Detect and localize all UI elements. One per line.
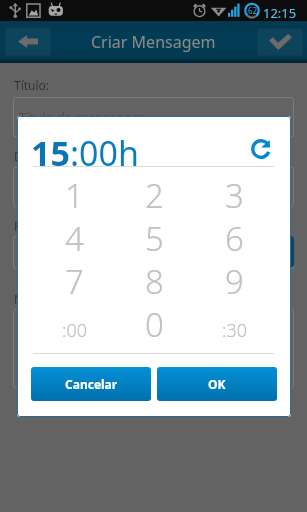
button[interactable]: 5 <box>114 216 194 259</box>
staticText: 15 <box>31 130 70 176</box>
staticText: 12:15 <box>263 4 297 22</box>
staticText: Cancelar <box>65 376 118 392</box>
button[interactable]: 8 <box>114 259 194 302</box>
button[interactable]: OK <box>157 367 277 401</box>
staticText: 0 <box>145 302 164 345</box>
staticText: OK <box>208 376 226 392</box>
staticText: 7 <box>65 259 84 302</box>
button[interactable]: Back <box>5 27 51 56</box>
staticText: 62 <box>248 5 258 16</box>
staticText: 2 <box>145 173 164 216</box>
staticText: Título da mensagem <box>19 108 145 126</box>
button[interactable]: 15 <box>31 130 140 176</box>
staticText: :30 <box>222 318 247 343</box>
button[interactable]: 9 <box>194 259 274 302</box>
button[interactable]: 6 <box>194 216 274 259</box>
button[interactable]: :00 <box>34 302 114 345</box>
button[interactable]: Save <box>257 28 303 56</box>
staticText: 4 <box>65 216 84 259</box>
staticText: Notificação: <box>14 291 81 307</box>
staticText: 9 <box>225 259 244 302</box>
button[interactable]: 7 <box>34 259 114 302</box>
button[interactable]: 1 <box>34 173 114 216</box>
staticText: Descrição: <box>14 148 73 164</box>
staticText: 1 <box>65 173 84 216</box>
staticText: Criar Mensagem <box>91 31 216 53</box>
button[interactable]: 3 <box>194 173 274 216</box>
button[interactable]: Reset time <box>245 133 277 165</box>
staticText: :00h <box>70 130 140 176</box>
staticText: 3 <box>225 173 244 216</box>
staticText: Período: <box>14 218 62 234</box>
button[interactable]: 0 <box>114 302 194 345</box>
button[interactable]: :30 <box>194 302 274 345</box>
staticText: :00 <box>62 318 87 343</box>
button[interactable]: Cancelar <box>31 367 151 401</box>
staticText: 5 <box>145 216 164 259</box>
staticText: 6 <box>225 216 244 259</box>
button[interactable]: 2 <box>114 173 194 216</box>
staticText: Título: <box>14 77 50 93</box>
staticText: 8 <box>145 259 164 302</box>
button[interactable]: 4 <box>34 216 114 259</box>
